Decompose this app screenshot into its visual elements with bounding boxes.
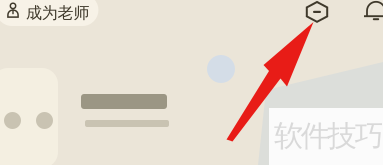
button[interactable]: 成为老师 [0, 0, 98, 26]
staticText: 成为老师 [26, 3, 89, 23]
button[interactable]: Notifications [363, 0, 383, 22]
staticText: 软件技巧 [274, 118, 383, 154]
button[interactable]: Pause streak [305, 1, 329, 23]
